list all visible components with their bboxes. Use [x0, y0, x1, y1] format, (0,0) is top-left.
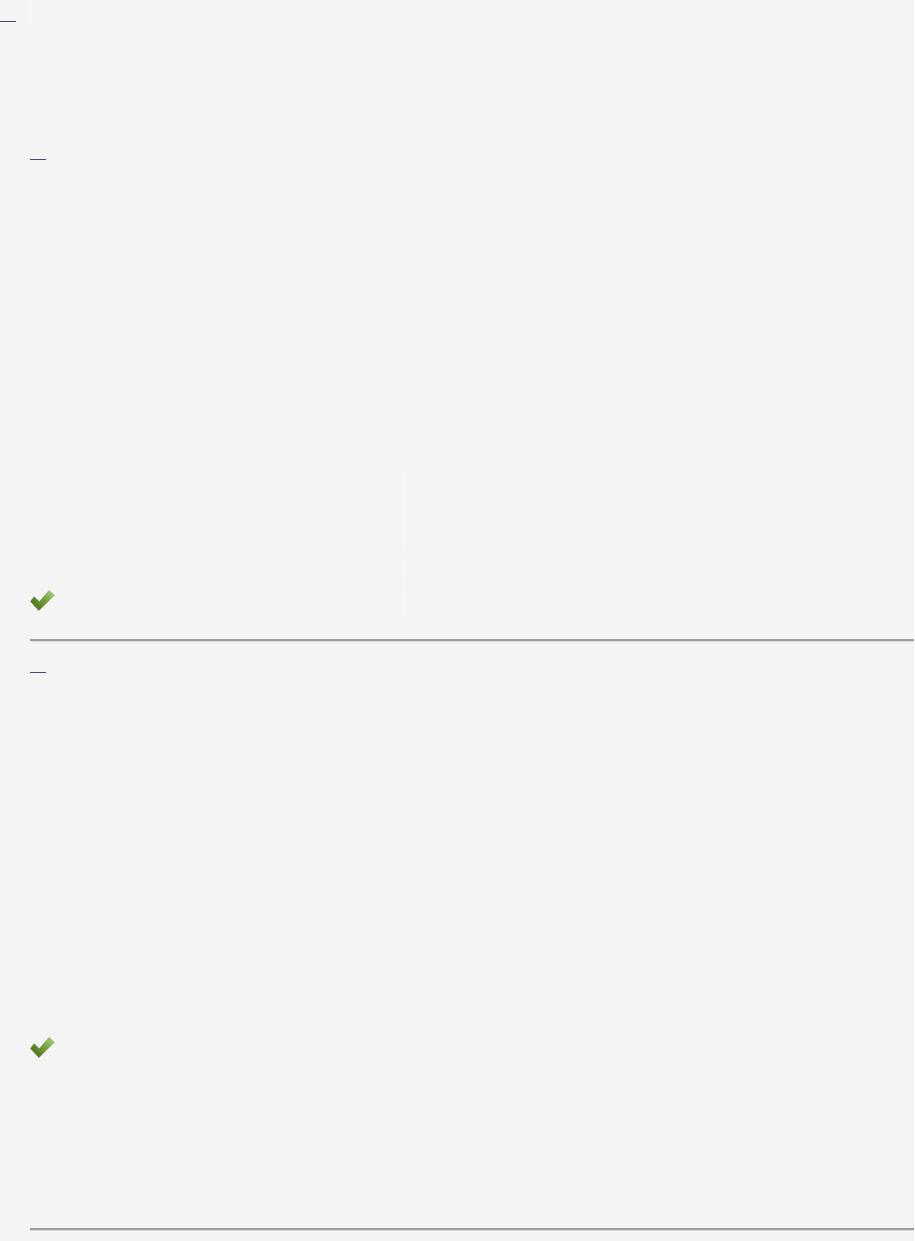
button[interactable]: Completed [30, 1036, 56, 1059]
button[interactable]: Back to overview [0, 18, 18, 25]
button[interactable]: Completed [30, 589, 56, 612]
button[interactable]: Section one heading [29, 156, 48, 163]
button[interactable]: Section two heading [29, 669, 48, 676]
